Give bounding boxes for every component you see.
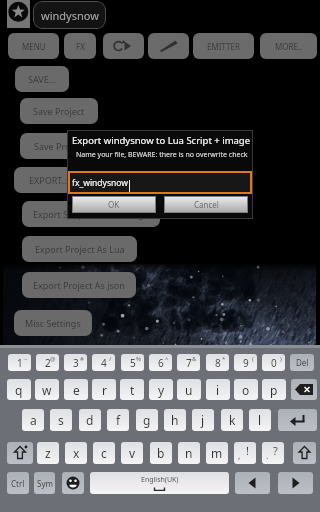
staticText: 2	[45, 356, 51, 370]
button[interactable]: m	[206, 442, 228, 464]
button[interactable]: Cancel	[164, 196, 248, 213]
button[interactable]: OK	[72, 196, 156, 213]
staticText: 9	[243, 356, 249, 370]
staticText: English(UK)	[141, 475, 179, 485]
button[interactable]: b	[150, 442, 172, 464]
button[interactable]: Emoji	[62, 472, 84, 494]
button[interactable]: fx_windysnow	[68, 171, 252, 194]
staticText: /	[109, 355, 112, 363]
staticText: 5	[130, 356, 136, 370]
button[interactable]: Favorite	[7, 0, 30, 28]
button[interactable]: 5	[121, 354, 144, 371]
button[interactable]: Enter	[278, 409, 317, 431]
staticText: s	[58, 412, 64, 428]
button[interactable]: English(UK)	[90, 472, 229, 494]
button[interactable]: g	[136, 409, 158, 431]
button[interactable]: k	[221, 409, 243, 431]
staticText: Export Script As Lua+image	[33, 208, 149, 220]
button[interactable]: Save Project	[20, 98, 98, 124]
staticText: fx_windysnow	[72, 177, 128, 189]
button[interactable]: v	[121, 442, 143, 464]
staticText: Cancel	[194, 199, 219, 210]
staticText: z	[45, 445, 51, 461]
staticText: Sym	[37, 478, 53, 489]
button[interactable]: r	[92, 379, 116, 400]
staticText: Name your file, BEWARE: there is no over…	[76, 150, 248, 160]
button[interactable]: p	[262, 379, 286, 400]
button[interactable]: e	[64, 379, 88, 400]
button[interactable]: windysnow	[33, 1, 106, 29]
button[interactable]: SAVE...	[15, 66, 69, 92]
button[interactable]: o	[234, 379, 258, 400]
staticText: ~	[24, 355, 28, 363]
button[interactable]: FX	[64, 33, 96, 59]
button[interactable]: 2	[36, 354, 59, 371]
button[interactable]: t	[120, 379, 144, 400]
button[interactable]: Previous	[235, 472, 270, 494]
staticText: FX	[76, 41, 85, 52]
button[interactable]: Backspace	[291, 379, 317, 400]
button[interactable]: Ctrl	[7, 472, 29, 494]
staticText: 3	[73, 356, 79, 370]
button[interactable]: MORE..	[260, 33, 317, 59]
button[interactable]: a	[22, 409, 44, 431]
button[interactable]: Shift	[7, 442, 33, 464]
button[interactable]: Next	[278, 472, 313, 494]
button[interactable]: 1	[8, 354, 31, 371]
button[interactable]: Export Project As json	[22, 272, 136, 298]
button[interactable]: Export Project As Lua	[22, 236, 137, 262]
button[interactable]: Misc Settings	[14, 310, 92, 336]
button[interactable]	[20, 345, 120, 371]
button[interactable]: w	[35, 379, 59, 400]
button[interactable]: !	[234, 442, 256, 464]
staticText: l	[258, 412, 262, 428]
staticText: Misc Settings	[25, 317, 81, 329]
button[interactable]: 8	[206, 354, 229, 371]
button[interactable]: 3	[64, 354, 87, 371]
button[interactable]: Save Project As...	[20, 133, 120, 159]
staticText: windysnow	[41, 8, 99, 23]
staticText: MENU	[22, 41, 46, 52]
button[interactable]: n	[178, 442, 200, 464]
button[interactable]: MENU	[8, 33, 59, 59]
button[interactable]: u	[177, 379, 201, 400]
staticText: h	[171, 412, 179, 428]
button[interactable]: 6	[149, 354, 172, 371]
staticText: Export Project As Lua	[35, 243, 125, 255]
button[interactable]: 0	[262, 354, 285, 371]
button[interactable]: x	[65, 442, 87, 464]
button[interactable]: z	[37, 442, 59, 464]
staticText: y	[158, 382, 165, 398]
button[interactable]: Export Script As Lua+image	[22, 201, 160, 227]
button[interactable]: EXPORT...	[14, 167, 84, 193]
button[interactable]: 7	[177, 354, 200, 371]
staticText: 8	[215, 356, 221, 370]
button[interactable]: Del	[290, 354, 314, 371]
button[interactable]: y	[149, 379, 173, 400]
button[interactable]: h	[164, 409, 186, 431]
button[interactable]: i	[206, 379, 230, 400]
button[interactable]: d	[79, 409, 101, 431]
button[interactable]: f	[107, 409, 129, 431]
staticText: r	[102, 382, 107, 398]
staticText: @	[50, 355, 56, 363]
staticText: m	[211, 445, 223, 461]
button[interactable]: EMITTER	[193, 33, 254, 59]
staticText: ,	[238, 449, 241, 461]
button[interactable]: c	[93, 442, 115, 464]
button[interactable]: 4	[92, 354, 115, 371]
button[interactable]: s	[50, 409, 72, 431]
button[interactable]: l	[249, 409, 271, 431]
button[interactable]: Draw	[148, 33, 189, 59]
button[interactable]: 9	[234, 354, 257, 371]
staticText: %	[136, 355, 141, 363]
button[interactable]: Shift	[293, 442, 316, 464]
button[interactable]: j	[192, 409, 214, 431]
staticText: i	[216, 382, 220, 398]
staticText: j	[201, 412, 205, 428]
button[interactable]: Sym	[34, 472, 55, 494]
button[interactable]: q	[7, 379, 31, 400]
button[interactable]: ?	[262, 442, 284, 464]
staticText: 7	[186, 356, 192, 370]
button[interactable]: Play	[103, 33, 144, 59]
